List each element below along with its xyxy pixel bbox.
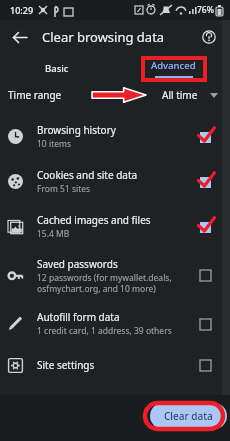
staticText: Time range [8, 88, 62, 102]
staticText: 1 credit card, 1 address, 39 others [37, 325, 172, 337]
staticText: 10:29 [10, 4, 34, 16]
button[interactable]: Autofill form data [0, 301, 230, 346]
staticText: 12 passwords (for mywallet.deals, osfmyc… [37, 272, 172, 294]
button[interactable]: Cached images and files [0, 204, 230, 249]
button[interactable]: Site settings [0, 346, 230, 384]
button[interactable]: Back [4, 22, 34, 52]
staticText: Saved passwords [37, 257, 118, 271]
staticText: 15.4 MB [37, 228, 70, 240]
staticText: Browsing history [37, 123, 116, 137]
button[interactable]: Clear data [150, 403, 227, 429]
button[interactable]: Help [196, 24, 222, 50]
staticText: 10 items [37, 138, 72, 150]
staticText: Clear browsing data [42, 28, 165, 46]
button[interactable]: Saved passwords [0, 249, 230, 301]
staticText: From 51 sites [37, 183, 91, 195]
staticText: Basic [45, 62, 69, 75]
button[interactable]: Cookies and site data [0, 159, 230, 204]
button[interactable]: Browsing history [0, 114, 230, 159]
staticText: Cookies and site data [37, 168, 138, 182]
staticText: All time [162, 88, 198, 102]
staticText: Clear data [164, 409, 213, 423]
button[interactable]: All time [162, 88, 218, 102]
staticText: Advanced [151, 59, 196, 72]
staticText: Site settings [37, 358, 95, 372]
button[interactable]: Advanced [138, 54, 208, 82]
staticText: Autofill form data [37, 310, 120, 324]
button[interactable]: Basic [22, 54, 92, 82]
staticText: 76% [197, 4, 214, 16]
staticText: Cached images and files [37, 213, 151, 227]
